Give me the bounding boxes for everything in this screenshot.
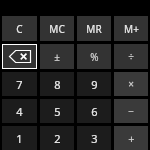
staticText: 6	[91, 104, 98, 119]
staticText: +	[128, 131, 135, 146]
staticText: %	[90, 50, 99, 64]
button[interactable]: %	[77, 44, 111, 69]
button[interactable]: ±	[40, 44, 74, 69]
button[interactable]: 4	[2, 99, 37, 123]
button[interactable]: MR	[77, 16, 111, 41]
staticText: 5	[54, 104, 61, 119]
staticText: 8	[54, 77, 61, 92]
staticText: ×	[128, 77, 134, 91]
button[interactable]: Backspace	[2, 44, 37, 69]
button[interactable]: 6	[77, 99, 111, 123]
staticText: MC	[49, 22, 65, 36]
staticText: MR	[86, 22, 102, 36]
button[interactable]: +	[114, 126, 148, 150]
staticText: ÷	[128, 50, 134, 64]
button[interactable]: 7	[2, 72, 37, 96]
button[interactable]: ÷	[114, 44, 148, 69]
staticText: 4	[16, 104, 23, 119]
button[interactable]: −	[114, 99, 148, 123]
button[interactable]: C	[2, 16, 37, 41]
staticText: M+	[124, 22, 139, 36]
staticText: ±	[54, 50, 60, 64]
button[interactable]: MC	[40, 16, 74, 41]
staticText: 3	[91, 131, 98, 146]
button[interactable]: M+	[114, 16, 148, 41]
button[interactable]: 8	[40, 72, 74, 96]
staticText: 1	[16, 131, 23, 146]
button[interactable]: 5	[40, 99, 74, 123]
staticText: −	[128, 104, 134, 118]
button[interactable]: 1	[2, 126, 37, 150]
button[interactable]: ×	[114, 72, 148, 96]
button[interactable]: 9	[77, 72, 111, 96]
staticText: 2	[54, 131, 61, 146]
staticText: 7	[16, 77, 23, 92]
staticText: C	[16, 22, 23, 36]
staticText: 9	[91, 77, 98, 92]
button[interactable]: 3	[77, 126, 111, 150]
button[interactable]: 2	[40, 126, 74, 150]
